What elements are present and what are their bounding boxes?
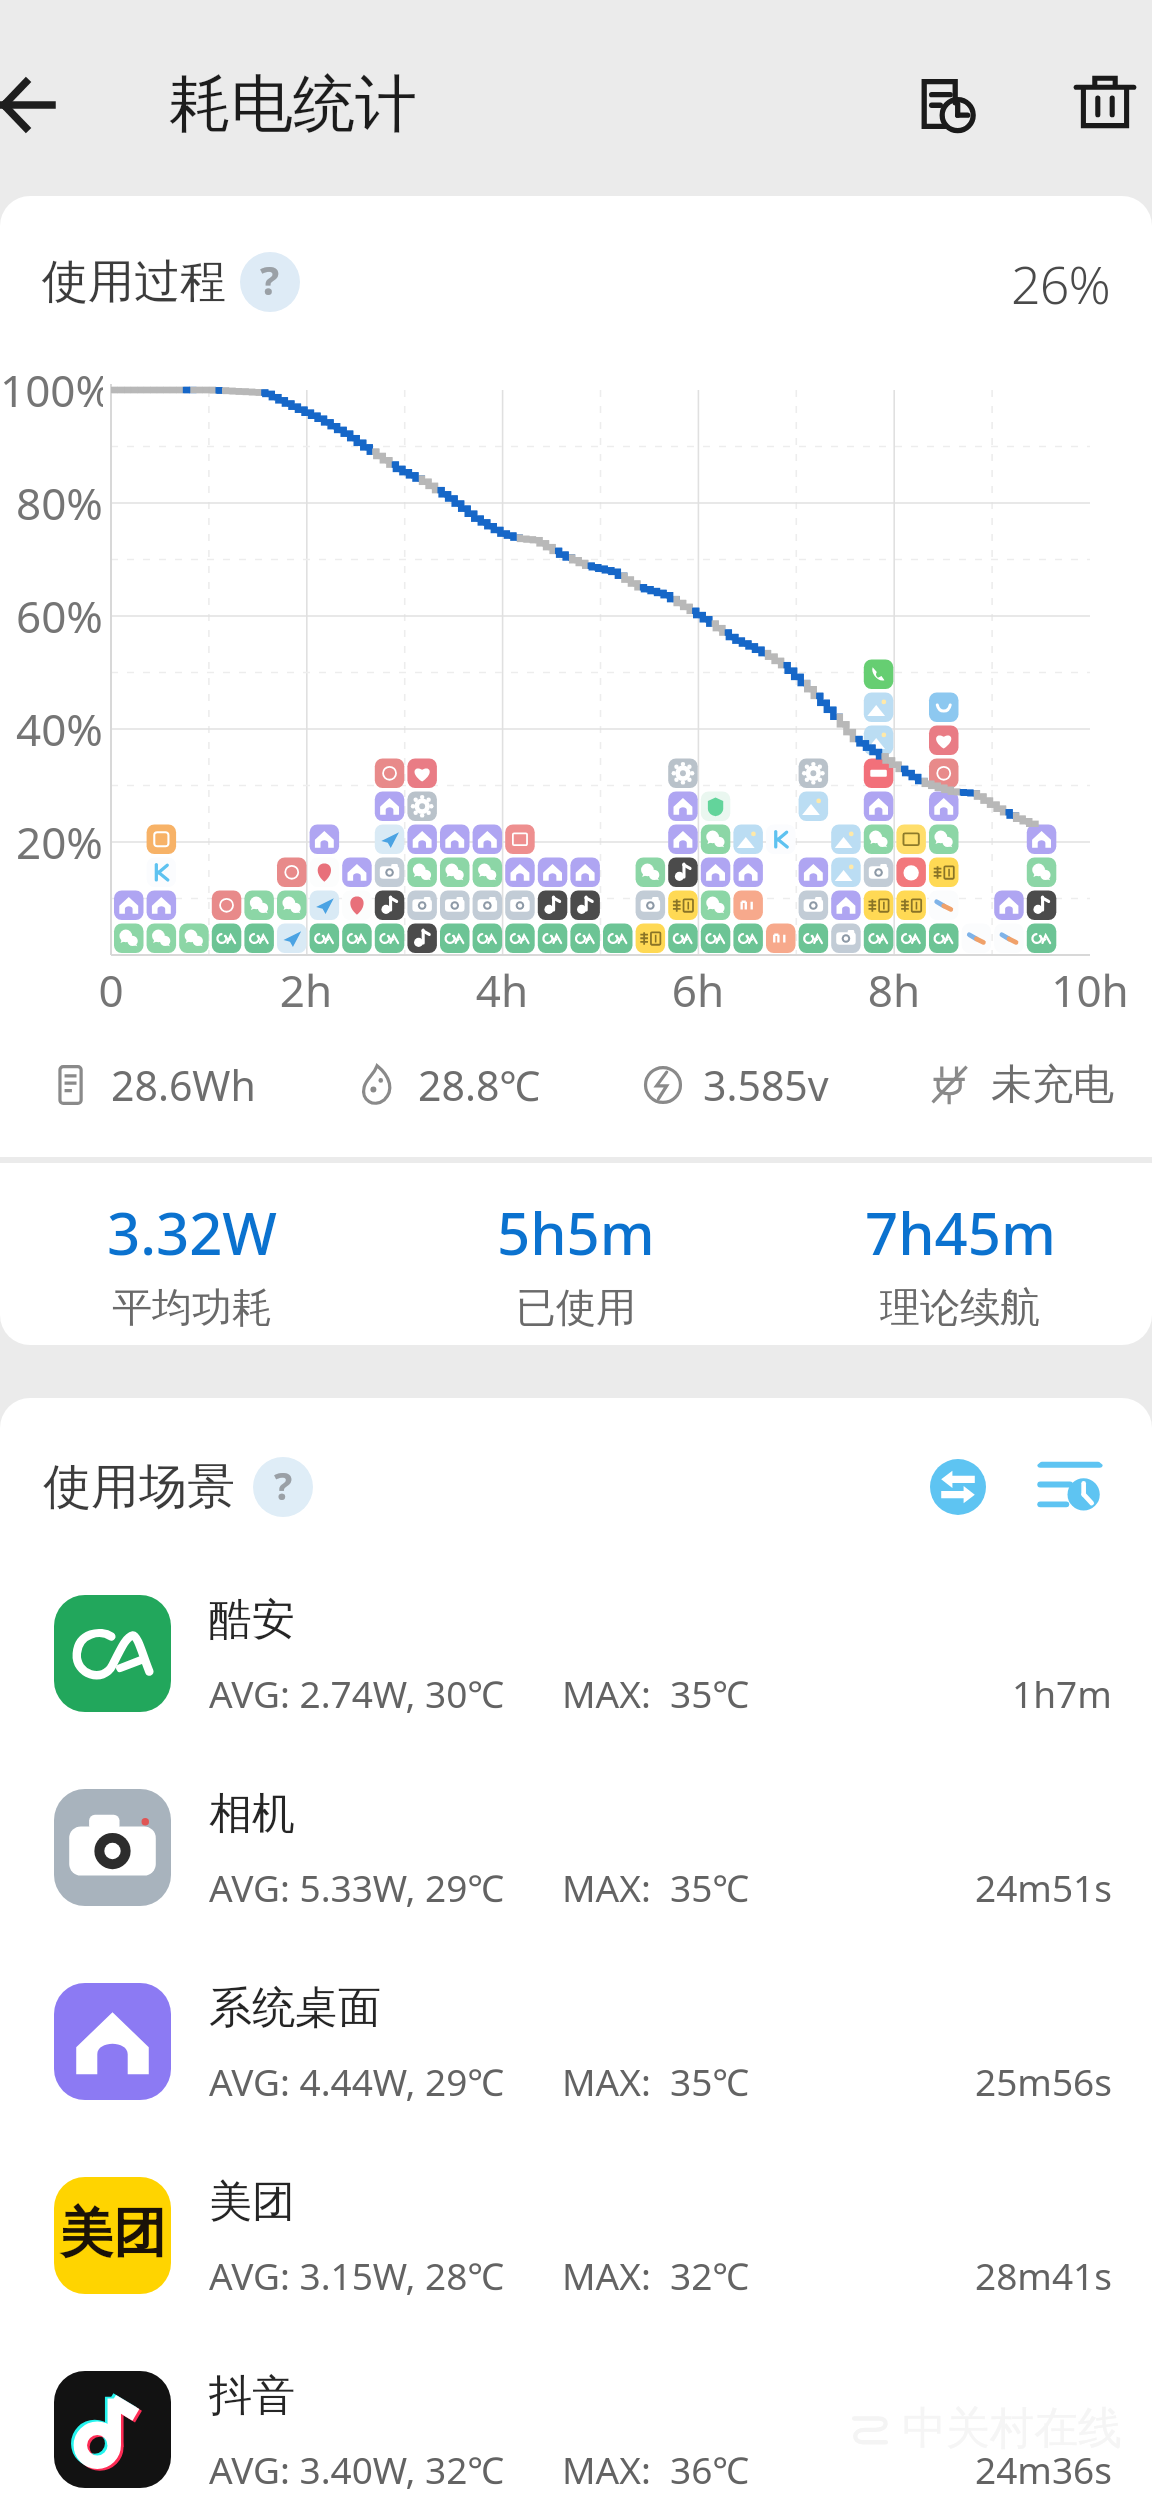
- staticText: 8h: [834, 960, 954, 1020]
- staticText: 已使用: [516, 1282, 636, 1332]
- staticText: MAX: 35℃: [562, 2056, 750, 2106]
- staticText: 0: [51, 960, 171, 1020]
- staticText: 20%: [16, 812, 103, 872]
- staticText: 系统桌面: [209, 1981, 381, 2035]
- staticText: 10h: [1030, 960, 1150, 1020]
- staticText: 28.6Wh: [111, 1057, 256, 1113]
- button[interactable]: Delete: [1055, 54, 1152, 154]
- staticText: 抖音: [209, 2369, 295, 2423]
- staticText: AVG: 3.15W, 28℃: [209, 2250, 505, 2300]
- staticText: 美团: [209, 2175, 295, 2229]
- staticText: AVG: 4.44W, 29℃: [209, 2056, 505, 2106]
- staticText: 4h: [442, 960, 562, 1020]
- staticText: MAX: 32℃: [562, 2250, 750, 2300]
- staticText: ?: [274, 1459, 293, 1511]
- staticText: 5h5m: [497, 1193, 655, 1272]
- staticText: 使用场景: [43, 1457, 235, 1517]
- staticText: 80%: [16, 473, 103, 533]
- button[interactable]: Help: [253, 1457, 313, 1517]
- staticText: MAX: 35℃: [562, 1862, 750, 1912]
- staticText: 28m41s: [975, 2250, 1112, 2300]
- staticText: 25m56s: [975, 2056, 1112, 2106]
- button[interactable]: 系统桌面: [0, 1969, 1152, 2163]
- staticText: 3.32W: [107, 1193, 277, 1272]
- button[interactable]: 美团: [0, 2163, 1152, 2357]
- button[interactable]: Sort by time: [1028, 1456, 1112, 1518]
- staticText: 中关村在线: [902, 2401, 1122, 2456]
- staticText: 26%: [1011, 248, 1110, 312]
- staticText: 酷安: [209, 1593, 295, 1647]
- staticText: 美团: [60, 2200, 166, 2267]
- staticText: 24m51s: [975, 1862, 1112, 1912]
- staticText: 7h45m: [865, 1193, 1056, 1272]
- button[interactable]: 抖音: [0, 2357, 1152, 2496]
- staticText: MAX: 35℃: [562, 1668, 750, 1718]
- staticText: 平均功耗: [112, 1282, 272, 1332]
- staticText: 40%: [16, 699, 103, 759]
- staticText: 理论续航: [880, 1282, 1040, 1332]
- staticText: 3.585v: [703, 1057, 829, 1113]
- staticText: AVG: 2.74W, 30℃: [209, 1668, 505, 1718]
- staticText: 100%: [0, 360, 103, 420]
- staticText: AVG: 3.40W, 32℃: [209, 2444, 505, 2494]
- button[interactable]: 相机: [0, 1775, 1152, 1969]
- staticText: ?: [260, 252, 280, 306]
- staticText: AVG: 5.33W, 29℃: [209, 1862, 505, 1912]
- staticText: 耗电统计: [169, 65, 417, 143]
- staticText: 1h7m: [1012, 1668, 1112, 1718]
- staticText: MAX: 36℃: [562, 2444, 750, 2494]
- button[interactable]: Back: [0, 48, 77, 148]
- button[interactable]: Help: [240, 252, 300, 312]
- button[interactable]: Sort order: [916, 1456, 1000, 1518]
- staticText: 相机: [209, 1787, 295, 1841]
- staticText: 未充电: [991, 1059, 1114, 1111]
- button[interactable]: History: [899, 54, 999, 154]
- staticText: 28.8℃: [418, 1057, 541, 1113]
- staticText: 使用过程: [42, 253, 226, 311]
- staticText: 24m36s: [975, 2444, 1112, 2494]
- staticText: 60%: [16, 586, 103, 646]
- button[interactable]: 酷安: [0, 1581, 1152, 1775]
- staticText: 2h: [246, 960, 366, 1020]
- staticText: 6h: [638, 960, 758, 1020]
